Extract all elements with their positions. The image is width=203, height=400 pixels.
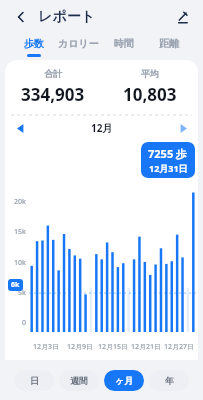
staticText: 334,903 [21, 83, 85, 106]
staticText: 10,803 [123, 83, 177, 106]
staticText: 10k [5, 258, 26, 268]
staticText: 7255 歩 [148, 146, 188, 161]
button[interactable]: 戻る [10, 6, 32, 28]
button[interactable]: ヶ月 [104, 370, 144, 391]
staticText: 12月3日 [33, 342, 60, 352]
button[interactable]: 歩数 [12, 34, 56, 60]
button[interactable]: カロリー [56, 34, 101, 60]
button[interactable]: 日 [14, 370, 54, 391]
staticText: 平均 [141, 68, 159, 79]
staticText: 日 [30, 375, 39, 386]
staticText: 0 [5, 318, 26, 328]
staticText: 12月27日 [164, 342, 195, 352]
staticText: 12月21日 [131, 342, 162, 352]
staticText: ヶ月 [115, 375, 134, 386]
staticText: 12月 [91, 121, 113, 135]
staticText: 時間 [114, 37, 134, 50]
staticText: 5k [5, 288, 26, 298]
button[interactable]: 編集 [171, 6, 193, 28]
staticText: 12月15日 [98, 342, 129, 352]
button[interactable]: 時間 [101, 34, 146, 60]
staticText: 距離 [159, 37, 179, 50]
staticText: 歩数 [24, 37, 44, 50]
staticText: 合計 [44, 68, 62, 79]
staticText: 15k [5, 227, 26, 237]
button[interactable]: 年 [149, 370, 189, 391]
button[interactable]: 次の月 [174, 119, 192, 137]
staticText: 12月9日 [67, 342, 94, 352]
staticText: 週間 [70, 375, 88, 386]
staticText: レポート [38, 8, 95, 26]
button[interactable]: 距離 [146, 34, 191, 60]
staticText: カロリー [58, 37, 99, 50]
button[interactable]: 週間 [59, 370, 99, 391]
button[interactable]: 前の月 [11, 119, 29, 137]
staticText: 12月31日 [149, 162, 188, 174]
staticText: 年 [165, 375, 174, 386]
staticText: 20k [5, 197, 26, 207]
staticText: 6k [11, 280, 20, 290]
